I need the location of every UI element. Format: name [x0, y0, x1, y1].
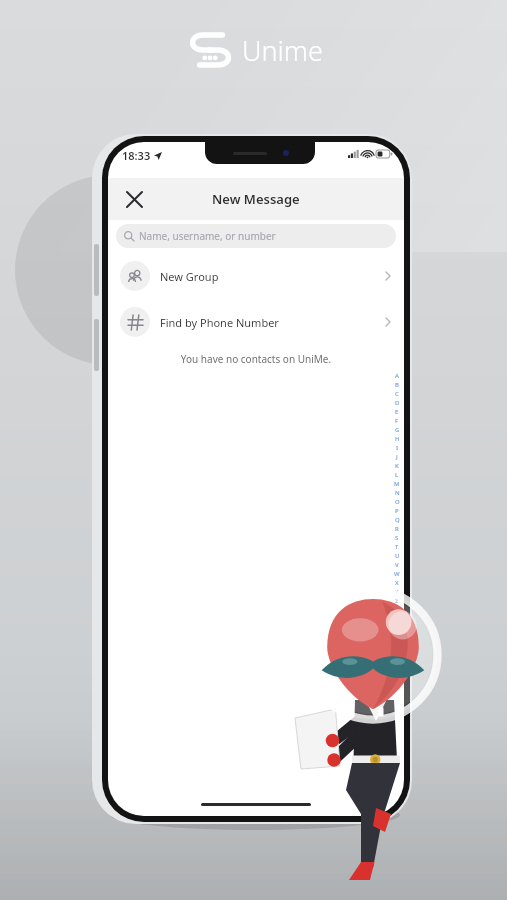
- staticText: A: [395, 372, 399, 380]
- staticText: 18:33: [122, 148, 151, 163]
- button[interactable]: New Group: [108, 258, 404, 294]
- staticText: Name, username, or number: [139, 229, 276, 243]
- staticText: G: [395, 426, 400, 434]
- staticText: New Group: [160, 269, 219, 284]
- staticText: P: [395, 507, 399, 515]
- staticText: I: [396, 444, 399, 452]
- staticText: Unime: [242, 32, 323, 69]
- button[interactable]: Close: [118, 183, 150, 215]
- staticText: F: [395, 417, 399, 425]
- staticText: K: [395, 462, 399, 470]
- button[interactable]: Name, username, or number: [116, 224, 396, 248]
- staticText: J: [396, 453, 398, 461]
- staticText: Z: [395, 597, 399, 605]
- staticText: R: [395, 525, 399, 533]
- button[interactable]: Find by Phone Number: [108, 304, 404, 340]
- staticText: U: [395, 552, 400, 560]
- staticText: Y: [395, 588, 399, 596]
- staticText: You have no contacts on UniMe.: [108, 352, 404, 366]
- staticText: W: [394, 570, 400, 578]
- staticText: N: [395, 489, 400, 497]
- staticText: C: [395, 390, 399, 398]
- staticText: O: [395, 498, 400, 506]
- staticText: E: [395, 408, 399, 416]
- staticText: #: [395, 606, 399, 614]
- staticText: D: [395, 399, 400, 407]
- staticText: B: [395, 381, 399, 389]
- staticText: V: [395, 561, 399, 569]
- staticText: H: [395, 435, 400, 443]
- staticText: T: [395, 543, 399, 551]
- staticText: X: [395, 579, 399, 587]
- staticText: Find by Phone Number: [160, 315, 279, 330]
- staticText: S: [395, 534, 399, 542]
- staticText: Q: [395, 516, 400, 524]
- staticText: L: [395, 471, 399, 479]
- staticText: New Message: [212, 190, 300, 208]
- staticText: M: [394, 480, 400, 488]
